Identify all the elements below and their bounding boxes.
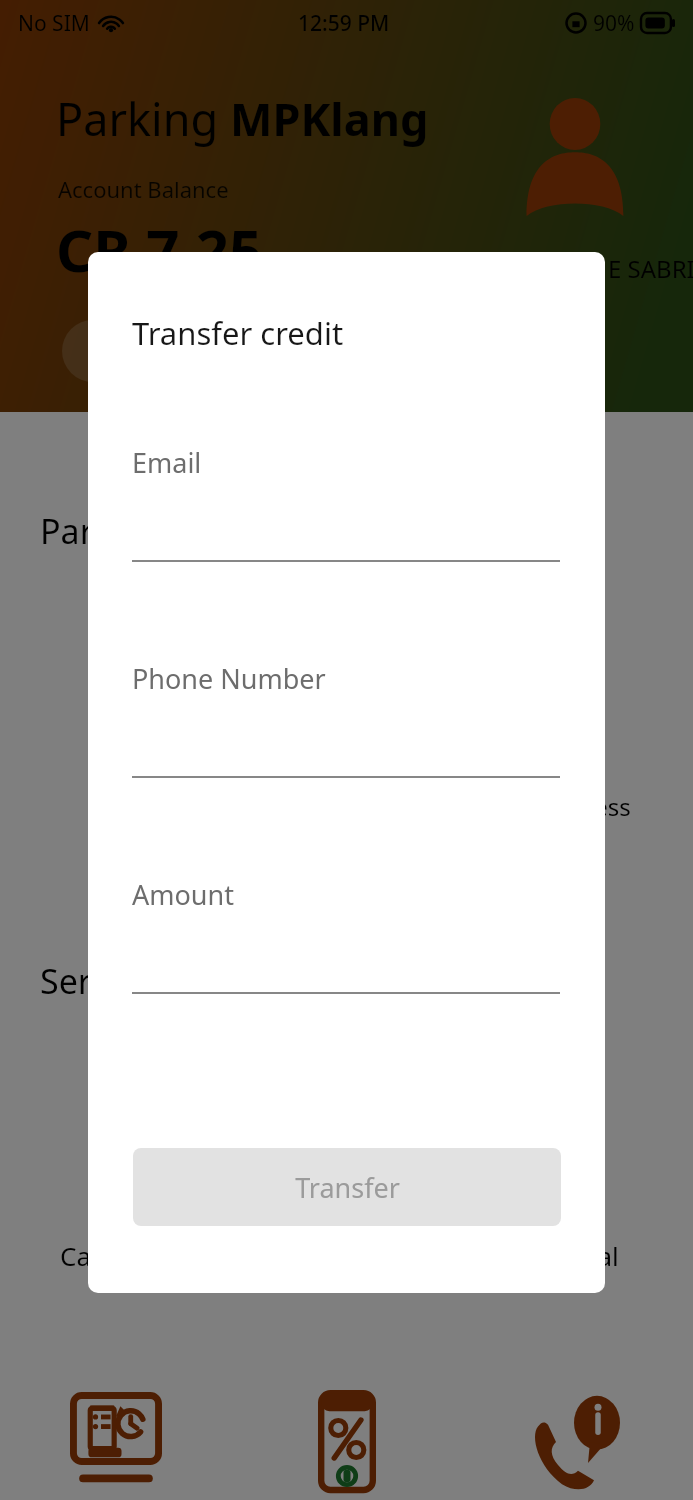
staticText: Address [540, 790, 631, 823]
button[interactable]: Contact information [462, 1380, 693, 1500]
button[interactable]: Promotions [231, 1380, 462, 1500]
staticText: CR 7.25 [56, 210, 263, 289]
staticText: MPKlang [230, 88, 429, 149]
button[interactable]: Amount [132, 876, 560, 994]
staticText: Cancel [60, 1238, 141, 1273]
staticText: No SIM [18, 9, 90, 38]
staticText: Renewal [516, 1238, 619, 1273]
button[interactable]: Phone Number [132, 660, 560, 778]
staticText: Transfer credit [132, 312, 344, 354]
staticText: Parking [40, 508, 163, 554]
staticText: Email [132, 444, 202, 481]
button[interactable] [62, 320, 124, 382]
staticText: Amount [132, 876, 234, 913]
button[interactable]: Email [132, 444, 560, 562]
button[interactable]: Transaction history [0, 1380, 231, 1500]
staticText: Phone Number [132, 660, 326, 697]
staticText: Services [40, 958, 170, 1004]
staticText: Transfer [295, 1169, 400, 1206]
staticText: E SABRI [608, 252, 693, 285]
staticText: Parking [56, 88, 230, 149]
staticText: Account Balance [58, 174, 229, 204]
staticText: 90% [593, 9, 635, 38]
button[interactable]: Transfer [133, 1148, 561, 1226]
staticText: 12:59 PM [298, 9, 390, 38]
